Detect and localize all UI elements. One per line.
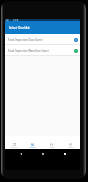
button[interactable]: Select Checklist (5, 21, 80, 34)
button[interactable]: Back (10, 153, 32, 155)
staticText: Food Inspection (New Taco Store) (8, 49, 73, 53)
button[interactable]: Download checklist (74, 38, 78, 42)
button[interactable]: Dashboard (5, 136, 23, 149)
button[interactable]: Camera (42, 136, 61, 149)
button[interactable]: Home (32, 153, 54, 155)
button[interactable]: Settings (61, 136, 80, 149)
button[interactable]: Recent apps (54, 153, 76, 155)
button[interactable]: Food Inspection (Taco Store) (5, 34, 80, 44)
staticText: Camera (49, 147, 55, 149)
staticText: Food Inspection (Taco Store) (8, 38, 73, 42)
staticText: Select Checklist (9, 26, 30, 30)
staticText: Checklists (29, 147, 36, 149)
button[interactable]: Start checklist (74, 49, 78, 53)
staticText: Dashboard (10, 147, 18, 149)
button[interactable]: Food Inspection (New Taco Store) (5, 45, 80, 55)
button[interactable]: Checklists (23, 136, 42, 149)
staticText: Settings (68, 147, 74, 149)
